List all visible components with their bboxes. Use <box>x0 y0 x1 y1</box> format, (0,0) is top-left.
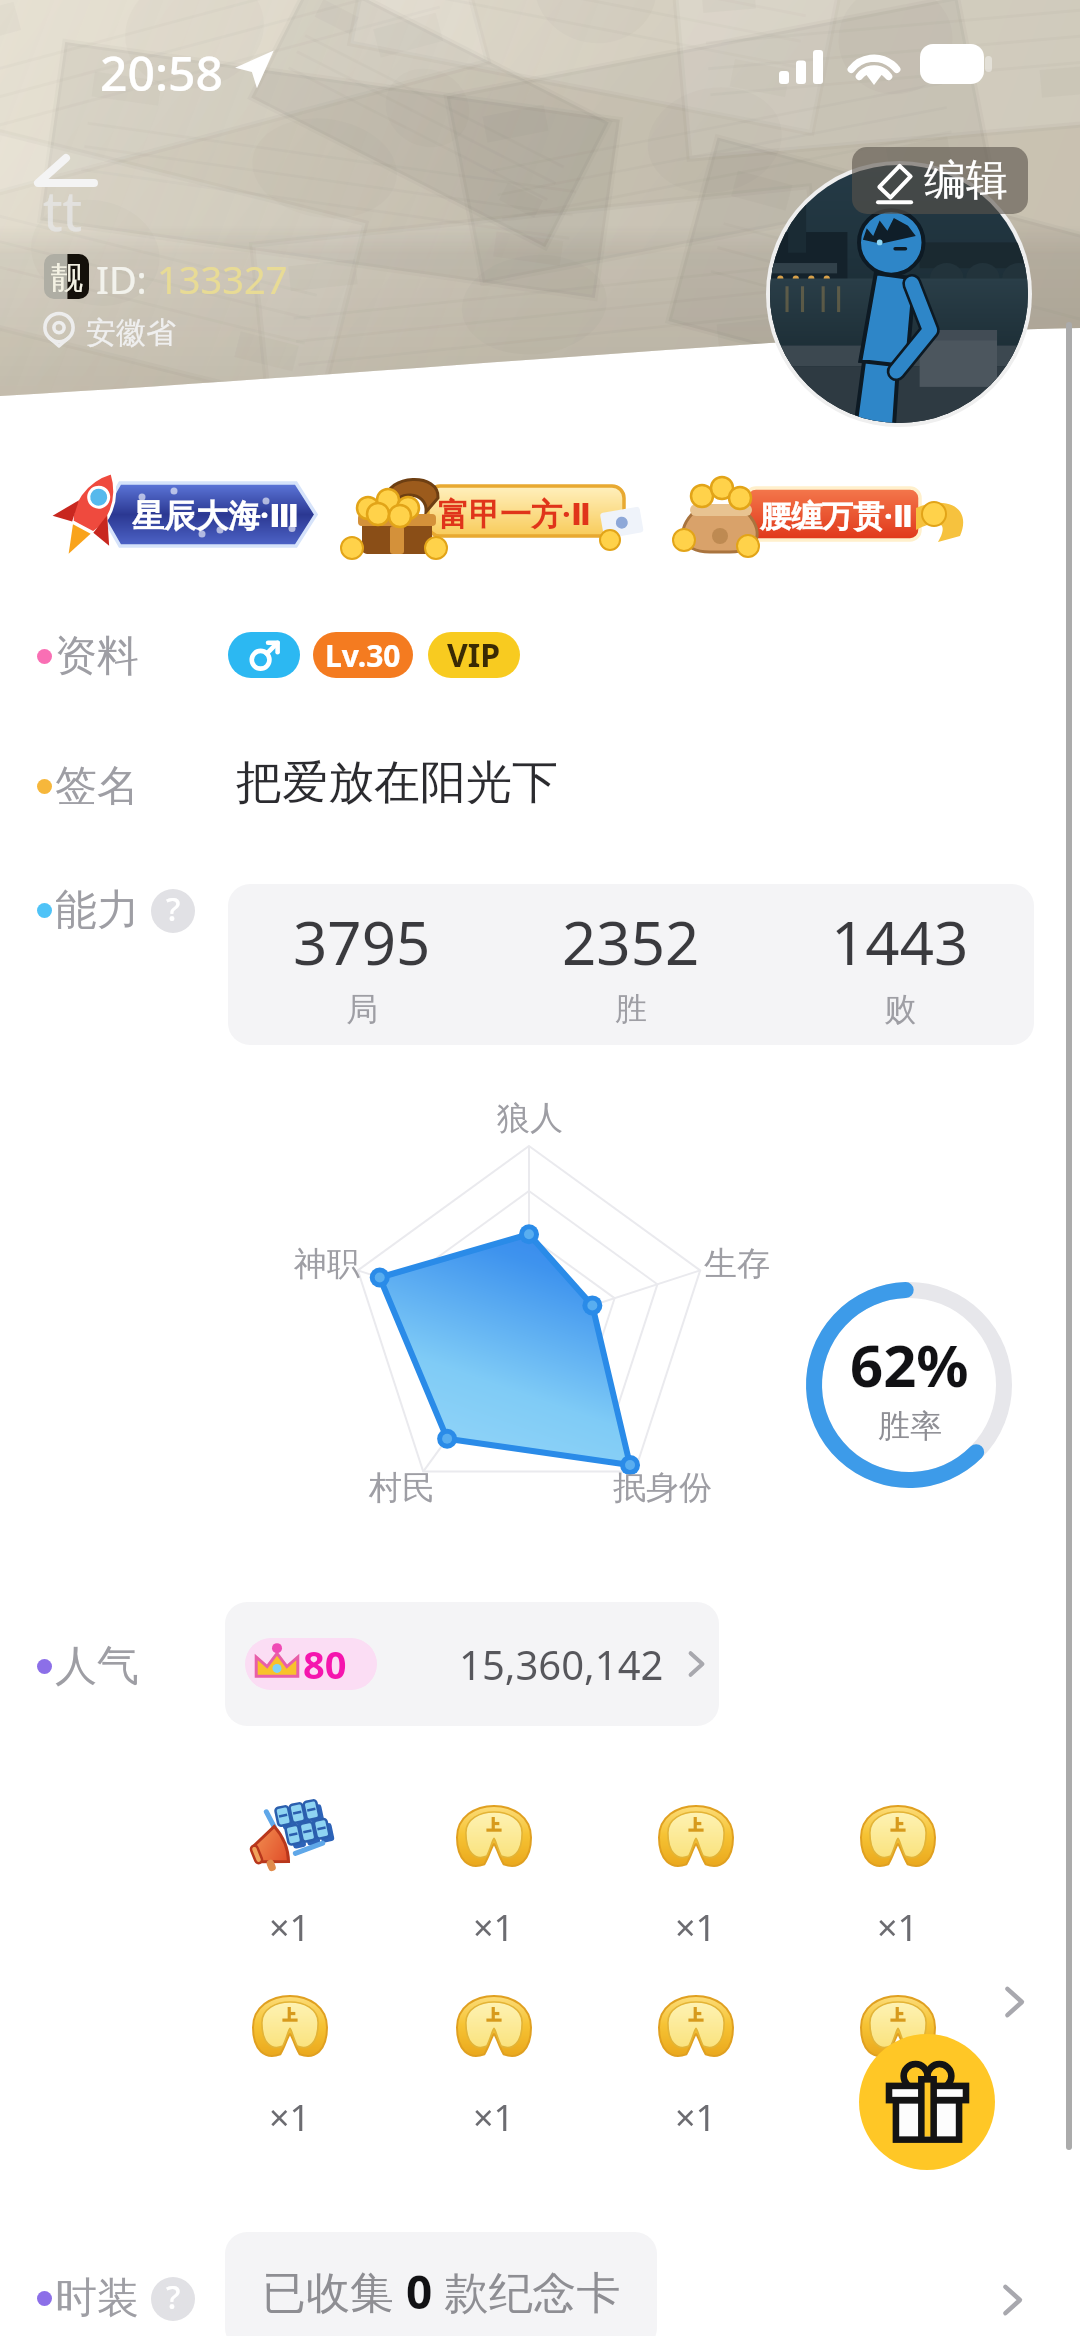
staticText: 局 <box>346 989 378 1029</box>
staticText: 抿身份 <box>613 1467 712 1509</box>
staticText: 2352 <box>562 901 700 983</box>
staticText: ×1 <box>675 1903 717 1952</box>
button[interactable]: 3795 <box>228 884 1034 1045</box>
button[interactable]: Gift item <box>860 1988 936 2142</box>
button[interactable]: More gifts <box>992 1980 1036 2024</box>
staticText: ×1 <box>675 2093 717 2142</box>
staticText: ? <box>166 889 181 931</box>
staticText: ×1 <box>877 1903 919 1952</box>
button[interactable]: 富甲一方·Ⅱ <box>342 474 632 546</box>
staticText: 款纪念卡 <box>433 2261 621 2321</box>
staticText: 133327 <box>157 253 288 305</box>
staticText: 靓 <box>51 257 83 297</box>
button[interactable]: VIP <box>428 632 520 678</box>
button[interactable]: 编辑 <box>852 147 1028 214</box>
staticText: 把爱放在阳光下 <box>236 754 558 812</box>
staticText: ×1 <box>269 1903 311 1952</box>
staticText: 胜 <box>615 989 647 1029</box>
button[interactable]: Open collection <box>990 2278 1034 2322</box>
staticText: 资料 <box>55 630 139 683</box>
staticText: 1443 <box>831 901 969 983</box>
button[interactable]: Avatar <box>770 165 1028 423</box>
staticText: 80 <box>303 1638 347 1690</box>
staticText: 人气 <box>55 1640 139 1693</box>
staticText: ×1 <box>877 2093 919 2142</box>
staticText: 神职 <box>294 1243 360 1285</box>
button[interactable]: Help <box>151 2277 195 2321</box>
button[interactable]: Gift item <box>860 1798 936 1952</box>
staticText: 败 <box>884 989 916 1029</box>
button[interactable]: Gift item <box>456 1988 532 2142</box>
button[interactable]: 星辰大海·Ⅲ <box>54 464 318 554</box>
button[interactable]: Gift item <box>252 1988 328 2142</box>
staticText: 能力 <box>55 884 139 937</box>
staticText: 星辰大海·Ⅲ <box>132 493 300 537</box>
staticText: 编辑 <box>924 154 1008 207</box>
staticText: 狼人 <box>497 1097 563 1139</box>
button[interactable]: Gift item <box>658 1798 734 1952</box>
staticText: 15,360,142 <box>459 1637 664 1691</box>
button[interactable]: Gift item <box>658 1988 734 2142</box>
button[interactable]: 已收集 <box>225 2232 657 2336</box>
staticText: 0 <box>406 2260 433 2323</box>
staticText: 生存 <box>704 1243 770 1285</box>
staticText: 3795 <box>293 901 431 983</box>
button[interactable]: 腰缠万贯·Ⅱ <box>676 476 976 548</box>
staticText: ID: <box>96 253 157 305</box>
staticText: 已收集 <box>262 2261 406 2321</box>
staticText: 时装 <box>55 2272 139 2325</box>
button[interactable]: 80 <box>225 1602 719 1726</box>
staticText: 腰缠万贯·Ⅱ <box>760 494 914 536</box>
staticText: tt <box>43 173 82 247</box>
staticText: 胜率 <box>878 1406 942 1446</box>
staticText: ? <box>166 2277 181 2319</box>
button[interactable]: Back <box>30 150 110 240</box>
staticText: ×1 <box>269 2093 311 2142</box>
staticText: 签名 <box>55 760 139 813</box>
staticText: ×1 <box>473 2093 515 2142</box>
button[interactable]: Gift item <box>252 1798 328 1952</box>
button[interactable]: Lv.30 <box>313 632 413 678</box>
button[interactable]: Help <box>151 889 195 933</box>
staticText: ×1 <box>473 1903 515 1952</box>
staticText: 62% <box>850 1325 969 1404</box>
staticText: 安徽省 <box>86 314 176 352</box>
staticText: 20:58 <box>100 40 223 105</box>
staticText: 村民 <box>369 1467 435 1509</box>
staticText: VIP <box>447 633 501 677</box>
button[interactable]: Gift <box>859 2034 995 2170</box>
button[interactable]: Gift item <box>456 1798 532 1952</box>
staticText: 富甲一方·Ⅱ <box>438 492 592 534</box>
staticText: Lv.30 <box>325 635 401 676</box>
button[interactable]: Male <box>228 632 300 678</box>
